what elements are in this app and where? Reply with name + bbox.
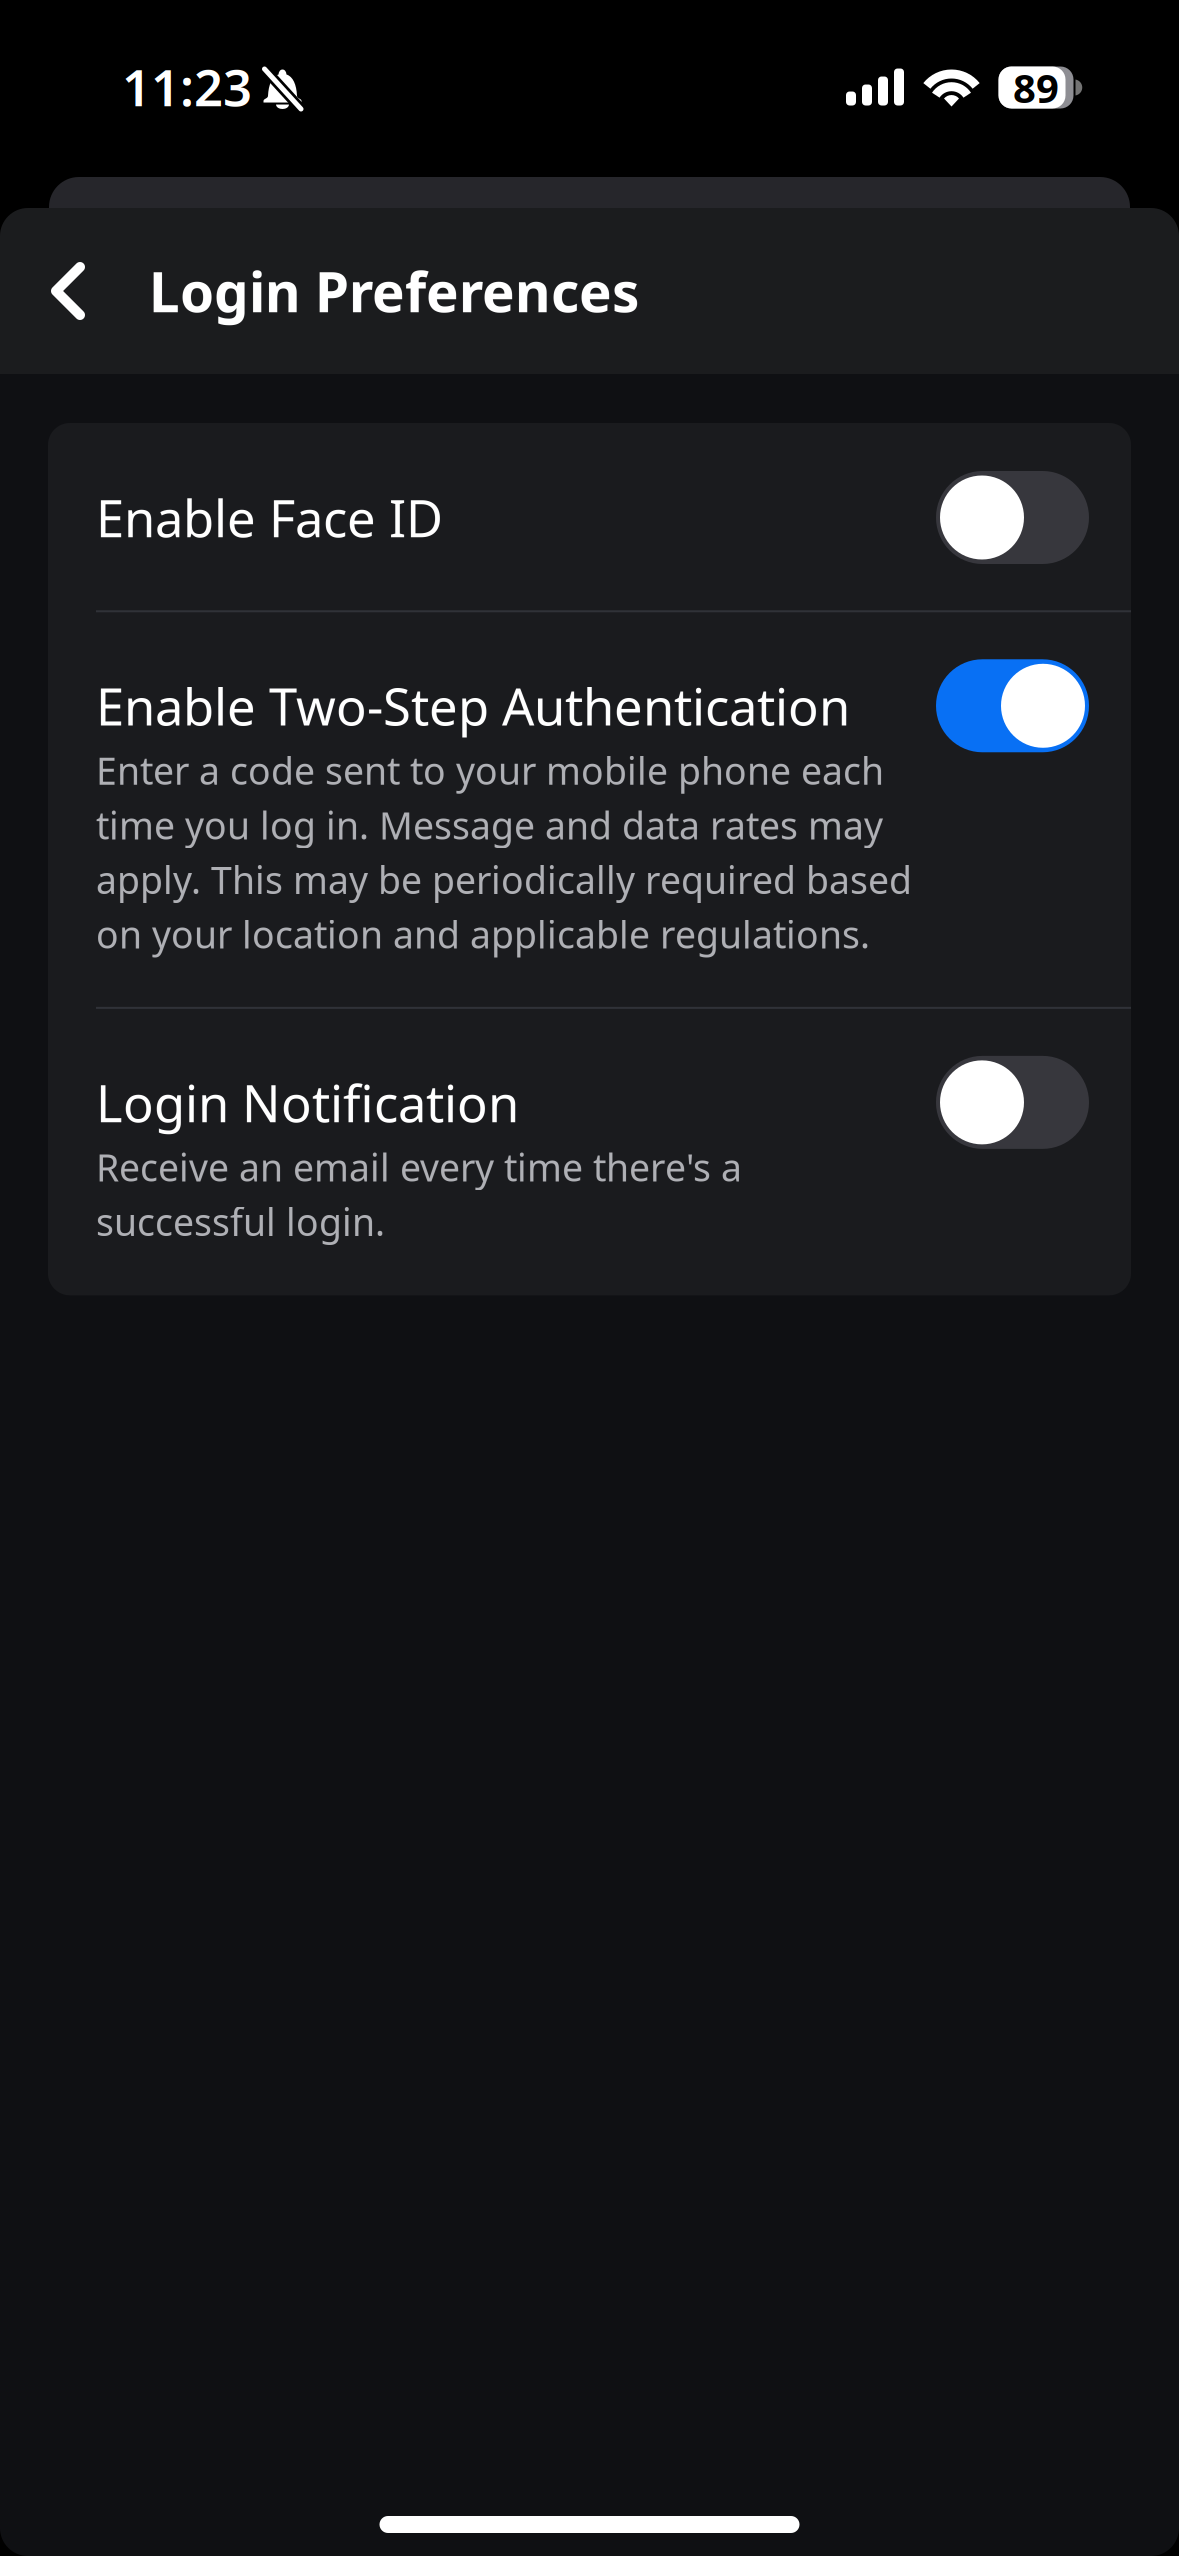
staticText: Enable Two-Step Authentication <box>96 672 850 740</box>
button[interactable]: Login Notification <box>48 1009 1131 1295</box>
button[interactable]: Enable Face ID <box>48 423 1131 610</box>
staticText: Receive an email every time there's a su… <box>96 1142 742 1246</box>
staticText: Login Notification <box>96 1069 519 1136</box>
staticText: 11:23 <box>122 53 252 120</box>
staticText: 89 <box>1013 61 1059 114</box>
staticText: Enter a code sent to your mobile phone e… <box>96 746 912 959</box>
button[interactable]: Back <box>0 208 149 374</box>
button[interactable]: Enable Two-Step Authentication <box>48 612 1131 1007</box>
staticText: Login Preferences <box>149 255 639 327</box>
staticText: Enable Face ID <box>96 484 443 551</box>
